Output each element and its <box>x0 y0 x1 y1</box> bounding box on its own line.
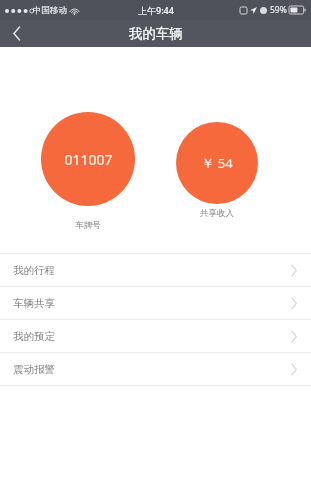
staticText: 59% <box>270 4 287 16</box>
button[interactable]: Back <box>0 20 34 47</box>
staticText: ￥ 54 <box>201 154 233 172</box>
staticText: 我的预定 <box>13 330 55 343</box>
staticText: 车牌号 <box>75 220 101 231</box>
staticText: 我的行程 <box>13 264 55 277</box>
staticText: 上午9:44 <box>138 4 174 16</box>
staticText: 震动报警 <box>13 363 55 376</box>
button[interactable]: 011007 <box>41 112 135 206</box>
button[interactable]: 车辆共享 <box>0 287 311 319</box>
button[interactable]: 震动报警 <box>0 353 311 385</box>
staticText: 我的车辆 <box>129 25 183 42</box>
staticText: 011007 <box>64 150 113 169</box>
button[interactable]: 我的行程 <box>0 254 311 286</box>
staticText: 共享收入 <box>200 208 234 219</box>
button[interactable]: ￥ 54 <box>176 122 258 204</box>
button[interactable]: 我的预定 <box>0 320 311 352</box>
staticText: 中国移动 <box>33 5 67 16</box>
staticText: 车辆共享 <box>13 297 55 310</box>
